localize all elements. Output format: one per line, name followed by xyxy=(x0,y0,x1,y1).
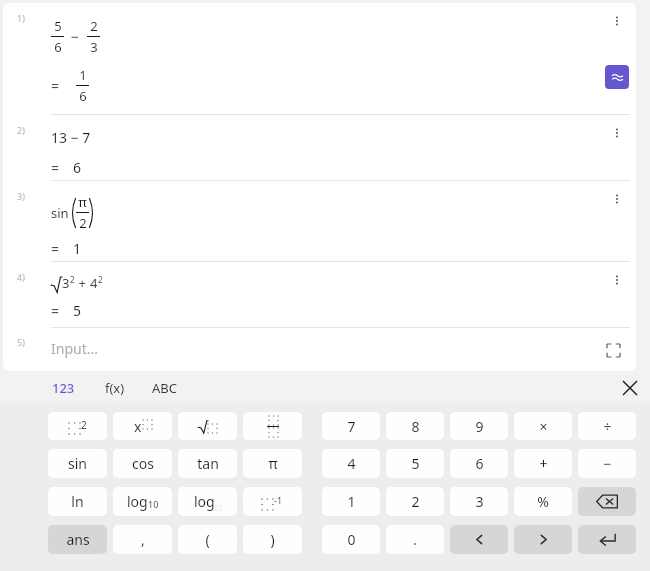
button[interactable]: 9 xyxy=(450,412,508,440)
button[interactable]: ans xyxy=(48,525,107,554)
button[interactable]: Fraction xyxy=(243,412,302,440)
button[interactable]: ln xyxy=(48,487,107,516)
button[interactable]: Enter xyxy=(578,525,636,554)
staticText: . xyxy=(413,530,417,549)
staticText: 6 xyxy=(54,38,62,56)
staticText: 4 xyxy=(90,274,98,292)
button[interactable]: × xyxy=(514,412,572,440)
button[interactable]: 2) xyxy=(3,115,636,180)
button[interactable]: + xyxy=(514,449,572,478)
button[interactable]: Fullscreen xyxy=(598,335,628,365)
button[interactable]: Inverse xyxy=(243,487,302,516)
staticText: f(x) xyxy=(105,379,125,397)
staticText: = xyxy=(51,239,60,258)
staticText: ans xyxy=(66,530,90,549)
button[interactable]: 1) xyxy=(3,3,636,114)
staticText: cos xyxy=(132,454,154,473)
button[interactable]: tan xyxy=(178,449,237,478)
button[interactable]: More options xyxy=(606,122,628,144)
staticText: 7 xyxy=(347,417,356,436)
staticText: 2 xyxy=(98,274,103,285)
button[interactable]: sin xyxy=(48,449,107,478)
button[interactable]: Log base xyxy=(178,487,237,516)
staticText: x xyxy=(134,417,142,436)
staticText: ÷ xyxy=(603,417,612,436)
staticText: 13 − 7 xyxy=(51,128,91,147)
staticText: % xyxy=(537,492,549,511)
button[interactable]: f(x) xyxy=(103,376,127,400)
button[interactable]: Backspace xyxy=(578,487,636,516)
button[interactable]: Right xyxy=(514,525,572,554)
staticText: Input... xyxy=(51,339,98,358)
button[interactable]: . xyxy=(386,525,444,554)
button[interactable]: 6 xyxy=(450,449,508,478)
button[interactable]: 4) xyxy=(3,262,636,327)
button[interactable]: 7 xyxy=(322,412,380,440)
staticText: 2 xyxy=(70,274,75,285)
button[interactable]: 2 xyxy=(386,487,444,516)
staticText: tan xyxy=(197,454,219,473)
staticText: 2 xyxy=(411,492,420,511)
staticText: -1 xyxy=(274,494,283,506)
button[interactable]: cos xyxy=(113,449,172,478)
staticText: log xyxy=(194,492,215,511)
button[interactable]: 5 xyxy=(386,449,444,478)
button[interactable]: , xyxy=(113,525,172,554)
button[interactable]: Square xyxy=(48,412,107,440)
staticText: + xyxy=(539,454,548,473)
staticText: 4) xyxy=(17,271,25,283)
button[interactable]: Approximate xyxy=(605,65,629,89)
button[interactable]: More options xyxy=(606,188,628,210)
staticText: 1) xyxy=(17,12,25,24)
button[interactable]: More options xyxy=(606,269,628,291)
button[interactable]: ( xyxy=(178,525,237,554)
staticText: ln xyxy=(71,492,84,511)
button[interactable]: 4 xyxy=(322,449,380,478)
staticText: sin xyxy=(51,204,69,222)
staticText: 6 xyxy=(475,454,484,473)
button[interactable]: 3) xyxy=(3,181,636,261)
staticText: 1 xyxy=(73,239,82,258)
staticText: 1 xyxy=(79,66,87,84)
staticText: 10 xyxy=(148,498,159,510)
staticText: 2 xyxy=(79,214,87,232)
button[interactable]: 8 xyxy=(386,412,444,440)
staticText: 5) xyxy=(17,336,25,348)
staticText: 2) xyxy=(17,124,25,136)
staticText: 6 xyxy=(79,87,87,105)
button[interactable]: ) xyxy=(243,525,302,554)
button[interactable]: Log base 10 xyxy=(113,487,172,516)
button[interactable]: ÷ xyxy=(578,412,636,440)
button[interactable]: Close keyboard xyxy=(616,374,644,401)
staticText: × xyxy=(539,417,548,436)
staticText: 4 xyxy=(347,454,356,473)
button[interactable]: π xyxy=(243,449,302,478)
staticText: − xyxy=(603,454,612,473)
staticText: + xyxy=(75,274,90,292)
staticText: − xyxy=(71,27,80,46)
staticText: 6 xyxy=(73,158,82,177)
staticText: 5 xyxy=(73,301,82,320)
button[interactable]: 123 xyxy=(50,376,77,400)
staticText: 0 xyxy=(347,530,356,549)
button[interactable]: 0 xyxy=(322,525,380,554)
button[interactable]: ABC xyxy=(150,376,179,400)
staticText: 3) xyxy=(17,190,25,202)
staticText: 3 xyxy=(90,38,98,56)
staticText: , xyxy=(141,530,145,549)
button[interactable]: 3 xyxy=(450,487,508,516)
staticText: sin xyxy=(68,454,87,473)
staticText: 3 xyxy=(475,492,484,511)
staticText: 5 xyxy=(54,17,62,35)
button[interactable]: 1 xyxy=(322,487,380,516)
staticText: 2 xyxy=(81,418,87,432)
button[interactable]: Power xyxy=(113,412,172,440)
button[interactable]: More options xyxy=(606,10,628,32)
button[interactable]: Left xyxy=(450,525,508,554)
staticText: 8 xyxy=(411,417,420,436)
button[interactable]: % xyxy=(514,487,572,516)
button[interactable]: Square root xyxy=(178,412,237,440)
staticText: 9 xyxy=(475,417,484,436)
button[interactable]: − xyxy=(578,449,636,478)
staticText: π xyxy=(268,454,278,473)
